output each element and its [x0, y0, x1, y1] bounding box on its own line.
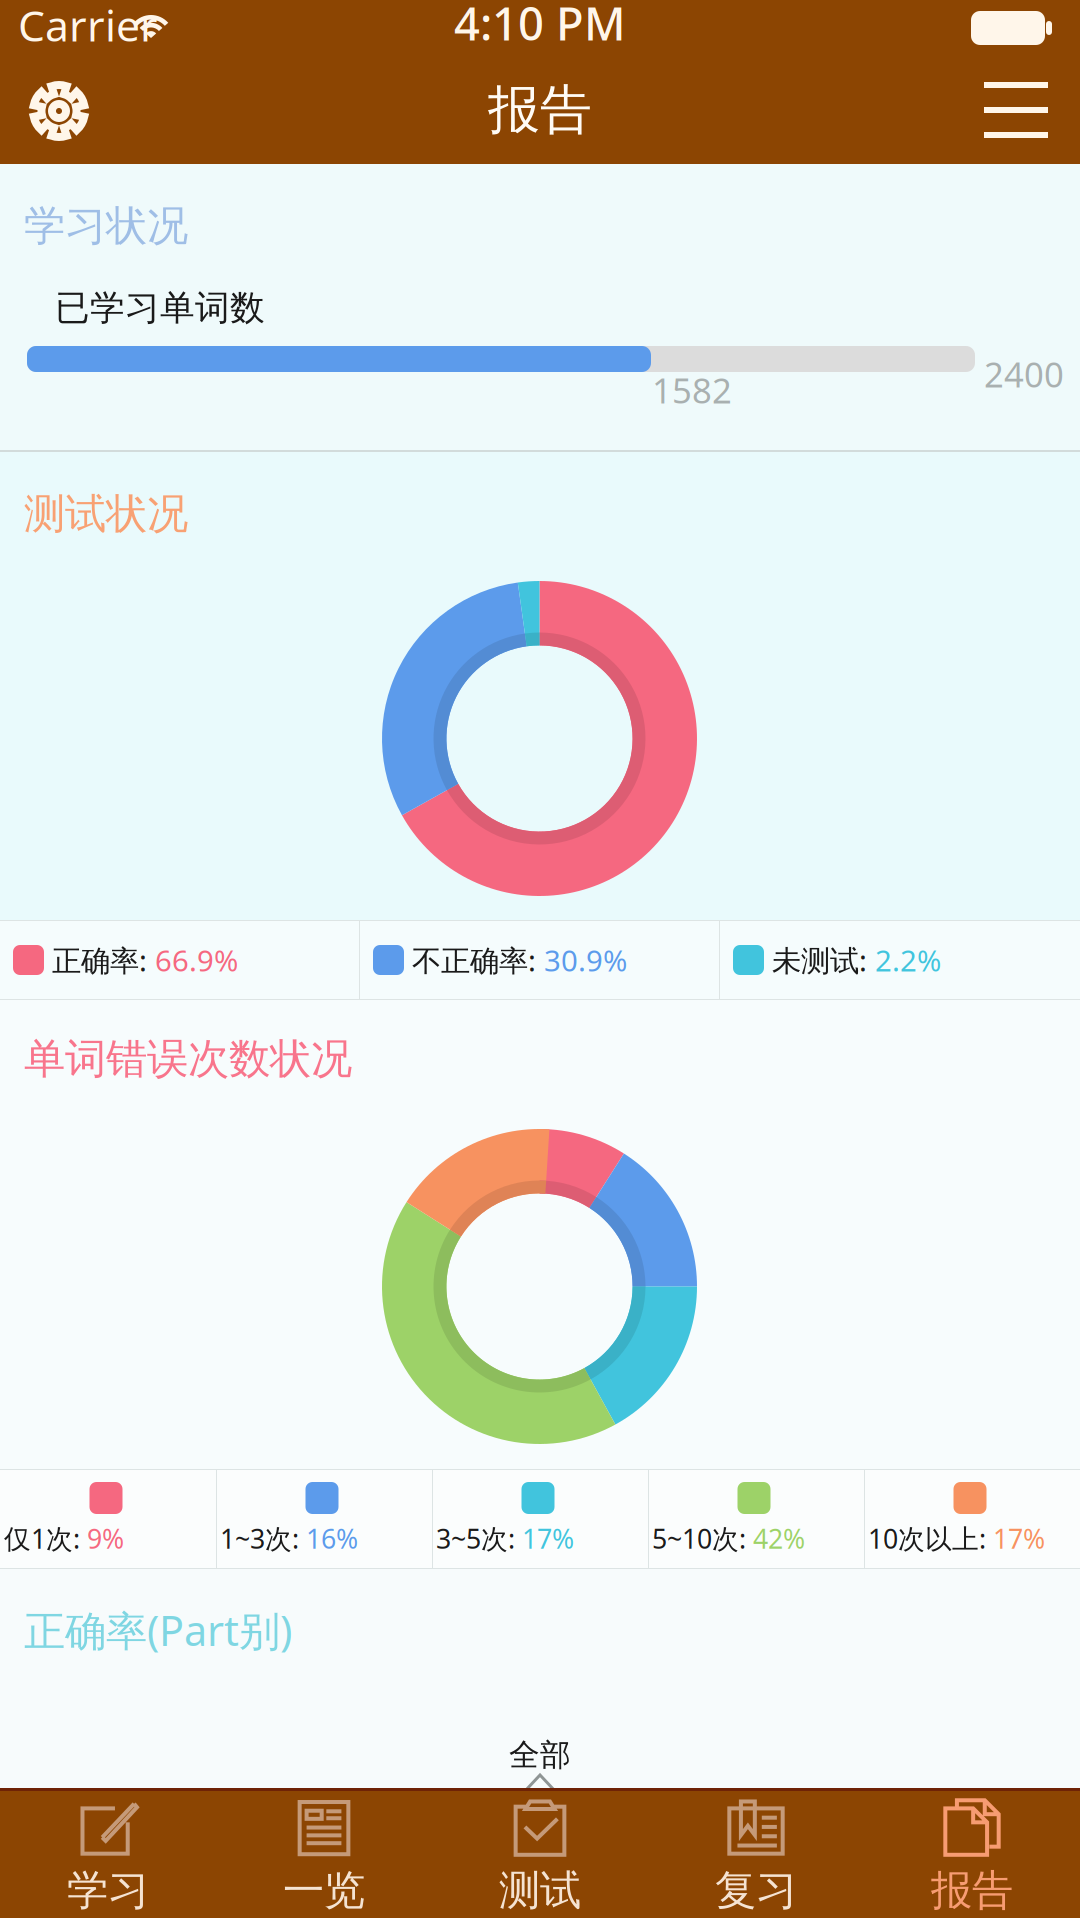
staticText: 不正确率: — [412, 940, 544, 979]
button[interactable]: Settings — [9, 58, 109, 164]
staticText: 测试状况 — [24, 489, 188, 539]
staticText: 仅1次: — [4, 1521, 87, 1556]
staticText: 3~5次: — [436, 1521, 522, 1556]
button[interactable]: Menu — [966, 58, 1066, 162]
button[interactable]: 测试 — [432, 1791, 648, 1918]
staticText: 42% — [753, 1521, 805, 1556]
staticText: 全部 — [509, 1736, 571, 1774]
staticText: 1~3次: — [220, 1521, 306, 1556]
staticText: 报告 — [931, 1865, 1013, 1916]
staticText: 单词错误次数状况 — [24, 1034, 352, 1084]
staticText: 10次以上: — [868, 1521, 993, 1556]
staticText: 正确率(Part别) — [24, 1603, 292, 1657]
staticText: 报告 — [488, 78, 592, 142]
staticText: 9% — [87, 1521, 124, 1556]
staticText: 2.2% — [875, 940, 941, 979]
staticText: 正确率: — [52, 940, 155, 979]
staticText: 5~10次: — [652, 1521, 753, 1556]
staticText: 复习 — [715, 1865, 797, 1916]
button[interactable]: 复习 — [648, 1791, 864, 1918]
button[interactable]: 学习 — [0, 1791, 216, 1918]
button[interactable]: 一览 — [216, 1791, 432, 1918]
staticText: 1582 — [652, 367, 732, 413]
button[interactable]: 报告 — [864, 1791, 1080, 1918]
staticText: 66.9% — [155, 940, 238, 979]
staticText: 17% — [522, 1521, 574, 1556]
staticText: 2400 — [984, 351, 1064, 397]
staticText: 17% — [993, 1521, 1045, 1556]
staticText: 4:10 PM — [454, 0, 626, 53]
staticText: 30.9% — [544, 940, 627, 979]
staticText: Carrier — [18, 0, 158, 53]
staticText: 已学习单词数 — [55, 287, 265, 329]
staticText: 16% — [306, 1521, 358, 1556]
staticText: 学习 — [67, 1865, 149, 1916]
staticText: 未测试: — [772, 940, 875, 979]
staticText: 一览 — [283, 1865, 365, 1916]
staticText: 测试 — [499, 1865, 581, 1916]
staticText: 学习状况 — [24, 201, 188, 251]
